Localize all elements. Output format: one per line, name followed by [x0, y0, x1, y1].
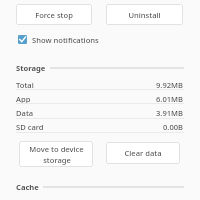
staticText: App [16, 94, 31, 104]
staticText: Show notifications [32, 35, 99, 45]
button[interactable]: SD card [16, 121, 184, 133]
staticText: Data [16, 108, 34, 118]
staticText: 0.00B [163, 122, 184, 132]
staticText: SD card [16, 122, 44, 132]
staticText: 3.91MB [156, 108, 184, 118]
staticText: Clear data [124, 148, 162, 158]
staticText: 6.01MB [156, 94, 184, 104]
button[interactable]: Data [16, 107, 184, 119]
button[interactable]: Uninstall [106, 4, 183, 25]
staticText: Total [16, 80, 34, 90]
staticText: Force stop [35, 10, 73, 20]
staticText: 9.92MB [156, 80, 184, 90]
button[interactable]: Move to device [19, 141, 93, 167]
button[interactable]: Force stop [16, 4, 92, 25]
staticText: Cache [16, 182, 39, 192]
staticText: Move to device [29, 144, 84, 154]
staticText: Uninstall [128, 10, 161, 20]
staticText: Storage [16, 63, 46, 73]
button[interactable]: App [16, 93, 184, 105]
staticText: storage [43, 155, 71, 165]
button[interactable]: Total [16, 79, 184, 91]
button[interactable]: Clear data [106, 142, 180, 164]
button[interactable]: Show notifications [16, 33, 126, 47]
